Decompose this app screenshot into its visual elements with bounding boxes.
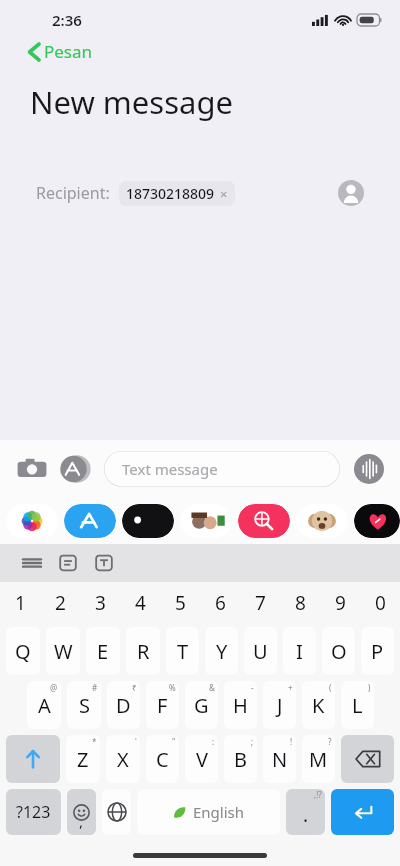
button[interactable]: 3 [80,582,120,624]
button[interactable]: C [146,735,179,783]
staticText: + [288,682,293,693]
staticText: K [312,692,325,719]
button[interactable] [296,504,348,538]
staticText: : [212,736,215,747]
button[interactable]: Audio message [354,454,384,484]
staticText: A [38,692,51,719]
staticText: # [92,682,98,693]
staticText: X [117,746,129,773]
staticText: ) [368,682,371,693]
button[interactable]: Backspace [341,735,394,783]
button[interactable]: Change language [102,789,131,835]
staticText: Q [15,638,31,665]
staticText: 18730218809 [126,184,215,203]
staticText: L [352,692,363,719]
button[interactable]: O [322,627,355,675]
button[interactable]: A [27,681,61,729]
button[interactable]: N [263,735,296,783]
button[interactable]: Shift [6,735,60,783]
staticText: - [251,682,254,693]
button[interactable] [238,504,290,538]
button[interactable]: Clipboard [54,549,82,577]
button[interactable]: Text style [90,549,118,577]
staticText: O [331,638,347,665]
button[interactable] [122,504,174,538]
button[interactable]: Add contact [338,180,364,206]
button[interactable]: Q [6,627,40,675]
staticText: ?123 [16,801,51,823]
staticText: ' [135,736,137,747]
button[interactable]: 6 [200,582,240,624]
button[interactable]: D [107,681,140,729]
button[interactable]: Menu [18,549,46,577]
button[interactable]: Pesan [28,40,93,63]
button[interactable]: 9 [320,582,360,624]
button[interactable] [64,504,116,538]
button[interactable]: 1 [0,582,40,624]
button[interactable]: V [185,735,218,783]
button[interactable]: Apps [60,454,90,484]
staticText: T [177,638,189,665]
button[interactable]: M [302,735,335,783]
button[interactable]: S [67,681,101,729]
staticText: English [193,802,245,822]
button[interactable]: E [86,627,120,675]
staticText: G [194,692,209,719]
button[interactable]: ?123 [6,789,61,835]
staticText: 1 [15,590,26,616]
staticText: D [116,692,131,719]
button[interactable]: Send [331,789,394,835]
button[interactable]: P [361,627,394,675]
button[interactable]: . [286,789,325,835]
button[interactable]: X [106,735,140,783]
button[interactable]: 18730218809 [126,184,228,203]
button[interactable]: 8 [280,582,320,624]
button[interactable]: English [137,789,280,835]
staticText: M [309,746,328,773]
button[interactable]: B [224,735,257,783]
button[interactable]: J [263,681,296,729]
button[interactable]: I [283,627,316,675]
staticText: 9 [335,590,346,616]
button[interactable]: Camera [16,453,48,485]
button[interactable] [180,504,232,538]
button[interactable]: 5 [160,582,200,624]
staticText: R [137,638,150,665]
staticText: 0 [375,590,386,616]
button[interactable]: Z [66,735,100,783]
button[interactable]: R [126,627,160,675]
button[interactable]: Y [205,627,238,675]
staticText: J [277,692,283,719]
button[interactable]: H [224,681,257,729]
staticText: Recipient: [36,182,110,204]
button[interactable]: 7 [240,582,280,624]
staticText: N [272,746,288,773]
staticText: @ [50,682,58,693]
button[interactable]: U [244,627,277,675]
staticText: " [172,736,176,747]
staticText: 2:36 [52,10,82,30]
button[interactable]: Text message [104,451,340,487]
button[interactable]: 4 [120,582,160,624]
button[interactable] [6,504,58,538]
staticText: U [253,638,268,665]
button[interactable]: W [46,627,80,675]
staticText: S [79,692,90,719]
staticText: Z [77,746,89,773]
staticText: 8 [295,590,306,616]
staticText: P [371,638,384,665]
button[interactable]: T [166,627,199,675]
button[interactable]: F [146,681,179,729]
staticText: E [97,638,109,665]
button[interactable]: K [302,681,335,729]
staticText: I [296,638,303,665]
button[interactable] [354,504,400,538]
staticText: ( [329,682,332,693]
button[interactable]: L [341,681,374,729]
button[interactable]: G [185,681,218,729]
staticText: ! [290,736,293,747]
button[interactable]: 2 [40,582,80,624]
button[interactable]: Emoji [67,789,96,835]
staticText: & [209,682,215,693]
button[interactable]: 0 [360,582,400,624]
